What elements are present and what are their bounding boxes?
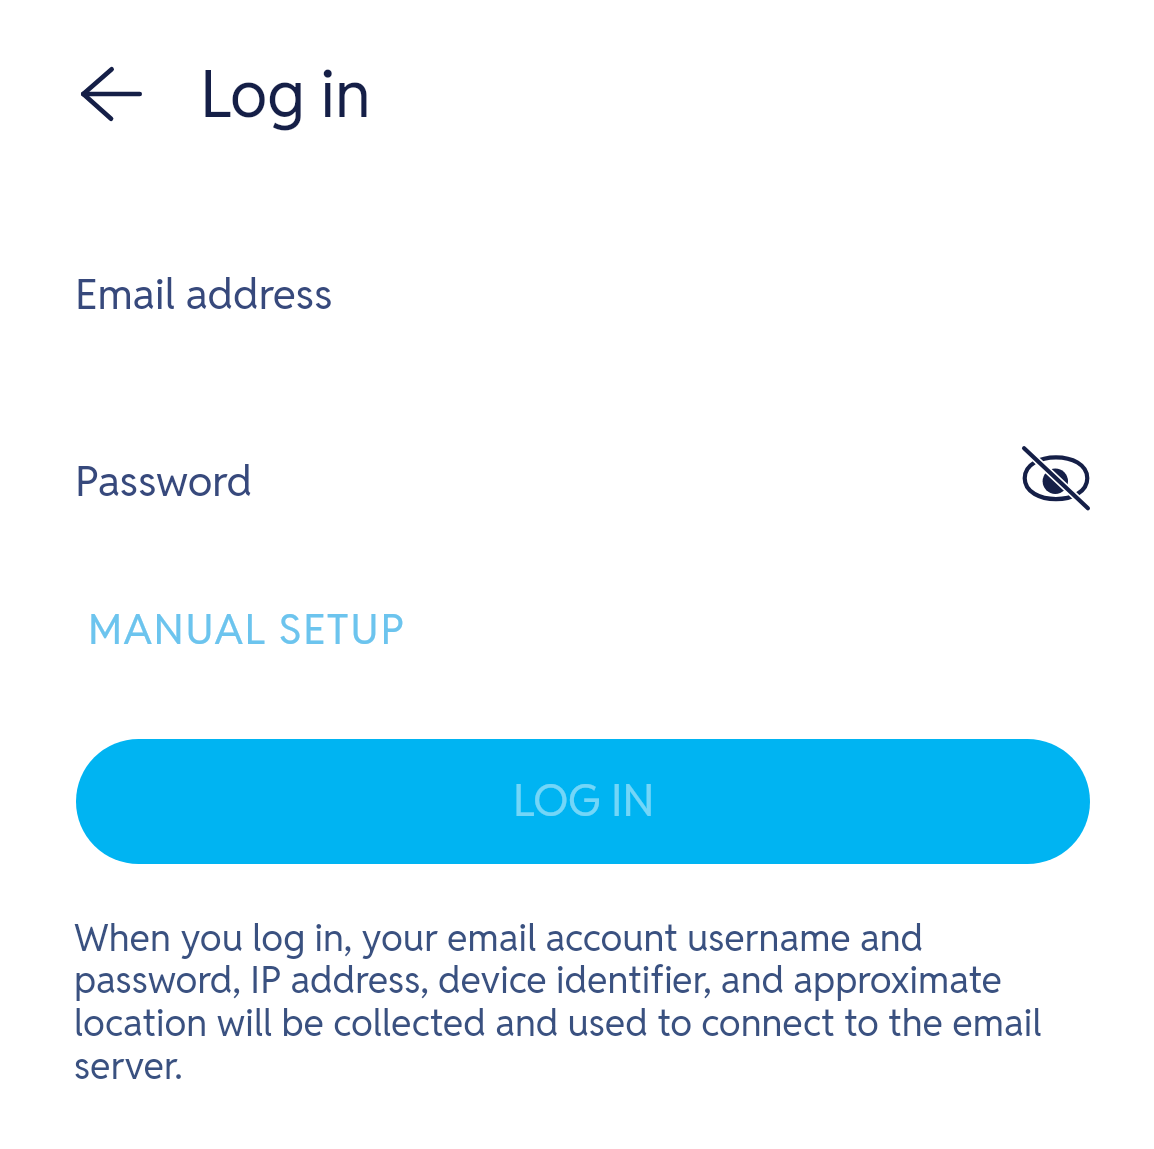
button[interactable]: MANUAL SETUP bbox=[72, 590, 422, 668]
staticText: MANUAL SETUP bbox=[88, 602, 406, 656]
button[interactable]: Password bbox=[0, 445, 1154, 515]
staticText: Log in bbox=[200, 52, 371, 135]
button[interactable]: Show password bbox=[1010, 431, 1102, 523]
staticText: Email address bbox=[75, 266, 333, 321]
staticText: Password bbox=[75, 453, 253, 508]
button[interactable]: Email address bbox=[0, 258, 1154, 328]
staticText: When you log in, your email account user… bbox=[74, 913, 1080, 1090]
button[interactable]: Back bbox=[57, 50, 165, 138]
staticText: LOG IN bbox=[513, 772, 654, 829]
button[interactable]: LOG IN bbox=[76, 739, 1090, 864]
